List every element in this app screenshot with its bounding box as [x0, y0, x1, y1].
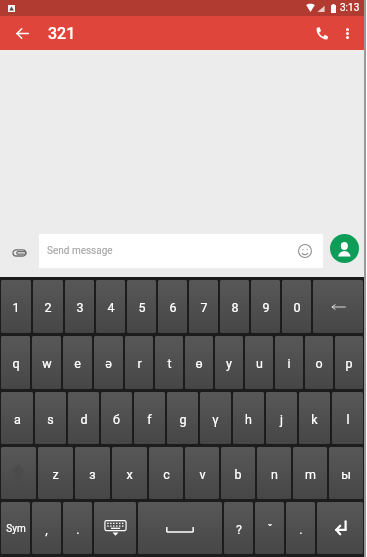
button[interactable]: Change keyboard [94, 502, 136, 554]
staticText: u [256, 356, 263, 371]
button[interactable]: m [293, 447, 327, 499]
staticText: o [315, 356, 323, 371]
button[interactable]: 0 [282, 280, 311, 333]
staticText: ˇ [267, 522, 273, 537]
staticText: , [45, 522, 48, 537]
button[interactable]: d [68, 392, 99, 444]
button[interactable]: Call [304, 16, 338, 50]
button[interactable]: r [125, 336, 153, 389]
staticText: f [147, 412, 152, 427]
staticText: 8 [231, 300, 239, 315]
button[interactable]: i [275, 336, 303, 389]
button[interactable]: Shift [1, 447, 36, 499]
button[interactable]: Attach file [0, 229, 38, 277]
staticText: w [42, 356, 52, 371]
button[interactable]: 5 [127, 280, 156, 333]
button[interactable]: l [332, 392, 363, 444]
button[interactable]: b [221, 447, 255, 499]
button[interactable]: б [101, 392, 132, 444]
staticText: 321 [48, 24, 76, 43]
button[interactable]: ˇ [255, 502, 284, 554]
staticText: i [287, 356, 291, 371]
staticText: 5 [138, 300, 146, 315]
button[interactable]: n [257, 447, 291, 499]
button[interactable]: y [215, 336, 243, 389]
button[interactable]: u [245, 336, 273, 389]
button[interactable]: з [75, 447, 110, 499]
button[interactable]: k [299, 392, 330, 444]
staticText: m [305, 467, 316, 482]
staticText: Sym [6, 523, 26, 535]
staticText: 6 [169, 300, 177, 315]
staticText: . [76, 522, 80, 537]
staticText: g [179, 412, 187, 427]
staticText: j [280, 412, 283, 427]
staticText: 2 [44, 300, 52, 315]
button[interactable]: 8 [220, 280, 249, 333]
button[interactable]: v [185, 447, 219, 499]
button[interactable]: ы [329, 447, 363, 499]
button[interactable]: s [35, 392, 66, 444]
staticText: ү [212, 412, 219, 427]
button[interactable]: Enter [317, 502, 363, 554]
staticText: k [311, 412, 318, 427]
button[interactable]: f [134, 392, 165, 444]
button[interactable]: 6 [158, 280, 187, 333]
button[interactable]: x [112, 447, 147, 499]
button[interactable]: q [1, 336, 30, 389]
button[interactable]: Contact [330, 234, 359, 263]
staticText: v [199, 467, 206, 482]
button[interactable]: p [335, 336, 363, 389]
staticText: d [80, 412, 88, 427]
staticText: Send message [47, 245, 113, 257]
button[interactable]: ү [200, 392, 231, 444]
staticText: ө [195, 356, 203, 371]
button[interactable]: ө [185, 336, 213, 389]
button[interactable]: 4 [96, 280, 125, 333]
button[interactable]: ? [224, 502, 253, 554]
button[interactable]: z [38, 447, 73, 499]
staticText: a [14, 412, 21, 427]
button[interactable]: 7 [189, 280, 218, 333]
button[interactable]: , [32, 502, 61, 554]
button[interactable]: Sym [1, 502, 30, 554]
button[interactable]: c [149, 447, 183, 499]
button[interactable]: 2 [33, 280, 63, 333]
staticText: . [299, 522, 303, 537]
staticText: ə [105, 356, 112, 371]
button[interactable]: 3 [65, 280, 94, 333]
button[interactable]: Backspace [313, 280, 363, 333]
button[interactable]: Space [138, 502, 222, 554]
button[interactable]: . [63, 502, 92, 554]
button[interactable]: ə [94, 336, 123, 389]
button[interactable]: Back [0, 16, 44, 50]
button[interactable]: t [155, 336, 183, 389]
button[interactable]: e [63, 336, 92, 389]
staticText: з [89, 467, 96, 482]
staticText: 3 [76, 300, 84, 315]
staticText: 4 [107, 300, 115, 315]
staticText: h [245, 412, 252, 427]
button[interactable]: a [1, 392, 33, 444]
button[interactable]: Send message [39, 234, 323, 268]
button[interactable]: j [266, 392, 297, 444]
staticText: q [12, 356, 20, 371]
staticText: 9 [262, 300, 270, 315]
button[interactable]: h [233, 392, 264, 444]
staticText: 1 [12, 300, 20, 315]
button[interactable]: g [167, 392, 198, 444]
button[interactable]: 9 [251, 280, 280, 333]
button[interactable]: Emoji [295, 241, 315, 261]
button[interactable]: 1 [1, 280, 31, 333]
staticText: s [47, 412, 54, 427]
button[interactable]: . [286, 502, 315, 554]
button[interactable]: More options [331, 16, 364, 50]
staticText: b [234, 467, 242, 482]
button[interactable]: o [305, 336, 333, 389]
staticText: y [226, 356, 232, 371]
button[interactable]: w [32, 336, 61, 389]
staticText: ? [236, 522, 242, 537]
staticText: r [137, 356, 142, 371]
staticText: t [167, 356, 172, 371]
staticText: e [74, 356, 81, 371]
